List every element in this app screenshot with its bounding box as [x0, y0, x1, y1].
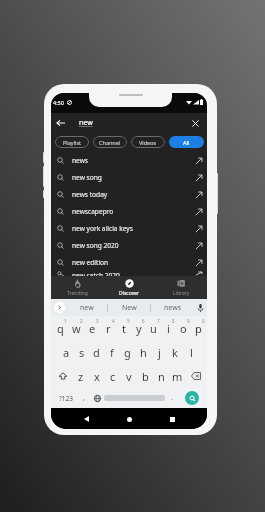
staticText: All	[183, 139, 190, 146]
button[interactable]: v	[121, 364, 137, 388]
button[interactable]: f	[104, 340, 119, 364]
staticText: z	[78, 369, 84, 384]
staticText: n	[158, 369, 165, 384]
staticText: Discover	[119, 290, 140, 297]
button[interactable]: p	[191, 316, 206, 340]
staticText: y	[136, 321, 142, 336]
staticText: e	[89, 321, 96, 336]
button[interactable]: c	[105, 364, 121, 388]
button[interactable]: Channel	[93, 136, 127, 148]
button[interactable]: i	[161, 316, 176, 340]
button[interactable]: g	[119, 340, 135, 364]
staticText: Channel	[99, 139, 121, 146]
button[interactable]: new	[65, 299, 108, 316]
staticText: new	[80, 303, 94, 313]
button[interactable]: k	[167, 340, 183, 364]
button[interactable]: news today	[51, 186, 207, 203]
staticText: 8	[172, 318, 175, 324]
button[interactable]: u	[146, 316, 161, 340]
button[interactable]: t	[116, 316, 131, 340]
button[interactable]: n	[153, 364, 169, 388]
button[interactable]: .	[165, 388, 179, 408]
button[interactable]: Playlist	[55, 136, 89, 148]
button[interactable]: Back	[53, 116, 67, 130]
button[interactable]: new song	[51, 169, 207, 186]
staticText: new catch 2020	[72, 271, 120, 276]
staticText: 4:50	[53, 99, 64, 106]
button[interactable]: new song 2020	[51, 237, 207, 254]
button[interactable]: news	[151, 299, 194, 316]
button[interactable]: Back	[78, 411, 94, 427]
staticText: news today	[72, 190, 108, 199]
staticText: m	[172, 369, 183, 384]
button[interactable]: ,	[78, 388, 90, 408]
staticText: b	[142, 369, 149, 384]
button[interactable]: new york alicia keys	[51, 220, 207, 237]
button[interactable]: z	[73, 364, 89, 388]
button[interactable]: h	[135, 340, 151, 364]
button[interactable]: j	[151, 340, 167, 364]
staticText: .	[171, 393, 173, 403]
button[interactable]: new catch 2020	[51, 271, 207, 276]
staticText: t	[122, 321, 126, 336]
staticText: d	[93, 345, 100, 360]
button[interactable]: ?123	[53, 388, 78, 408]
staticText: 1	[64, 318, 67, 324]
staticText: k	[172, 345, 178, 360]
staticText: new song 2020	[72, 241, 119, 250]
staticText: new york alicia keys	[72, 224, 133, 233]
button[interactable]: d	[89, 340, 104, 364]
button[interactable]: q	[52, 316, 68, 340]
staticText: ,	[83, 393, 85, 403]
button[interactable]: new edition	[51, 254, 207, 271]
button[interactable]: Discover	[103, 276, 155, 299]
button[interactable]: m	[169, 364, 185, 388]
button[interactable]: Voice input	[194, 299, 207, 316]
button[interactable]: w	[68, 316, 84, 340]
staticText: news	[72, 156, 89, 165]
button[interactable]: Library	[155, 276, 207, 299]
button[interactable]: s	[74, 340, 89, 364]
staticText: Trending	[67, 290, 88, 297]
button[interactable]: b	[137, 364, 153, 388]
staticText: s	[79, 345, 85, 360]
staticText: g	[124, 345, 131, 360]
staticText: v	[126, 369, 132, 384]
staticText: i	[167, 321, 170, 336]
button[interactable]: Recent apps	[164, 411, 180, 427]
button[interactable]: a	[59, 340, 74, 364]
staticText: newscapepro	[72, 207, 114, 216]
button[interactable]: Shift	[52, 364, 73, 388]
button[interactable]: New	[108, 299, 151, 316]
button[interactable]: news	[51, 152, 207, 169]
staticText: j	[158, 345, 161, 360]
button[interactable]: All	[169, 136, 204, 148]
button[interactable]: o	[176, 316, 191, 340]
staticText: q	[57, 321, 64, 336]
button[interactable]: Clear search	[188, 116, 202, 130]
staticText: f	[110, 345, 114, 360]
button[interactable]: y	[131, 316, 146, 340]
button[interactable]: x	[89, 364, 105, 388]
staticText: 2	[80, 318, 83, 324]
staticText: Videos	[139, 139, 157, 146]
staticText: c	[110, 369, 116, 384]
staticText: h	[140, 345, 147, 360]
staticText: new edition	[72, 258, 109, 267]
staticText: r	[106, 321, 111, 336]
staticText: New	[122, 303, 137, 313]
button[interactable]: Home	[121, 411, 137, 427]
button[interactable]: Backspace	[185, 364, 206, 388]
button[interactable]: newscapepro	[51, 203, 207, 220]
button[interactable]: e	[84, 316, 100, 340]
button[interactable]: l	[183, 340, 199, 364]
button[interactable]: Trending	[51, 276, 103, 299]
button[interactable]: r	[100, 316, 116, 340]
staticText: Library	[173, 290, 190, 297]
button[interactable]: Search	[185, 391, 199, 405]
button[interactable]: Switch language	[90, 388, 104, 408]
button[interactable]: Expand toolbar	[54, 302, 65, 313]
staticText: Playlist	[63, 139, 82, 146]
button[interactable]: Videos	[131, 136, 165, 148]
